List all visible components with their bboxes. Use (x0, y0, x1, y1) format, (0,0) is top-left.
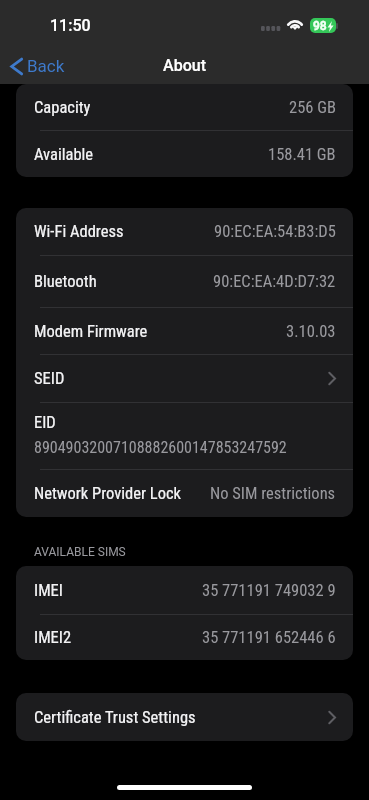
staticText: Bluetooth (34, 272, 97, 291)
staticText: Certificate Trust Settings (34, 708, 196, 727)
button[interactable]: Capacity (16, 84, 353, 130)
button[interactable]: IMEI2 (16, 615, 353, 660)
staticText: 90:EC:EA:4D:D7:32 (213, 272, 336, 291)
button[interactable]: SEID (16, 355, 353, 402)
staticText: 90:EC:EA:54:B3:D5 (214, 222, 336, 241)
button[interactable]: Bluetooth (16, 256, 353, 307)
staticText: IMEI2 (34, 628, 72, 647)
staticText: Wi-Fi Address (34, 222, 124, 241)
staticText: 89049032007108882600147853247592 (34, 438, 287, 457)
button[interactable]: IMEI (16, 566, 353, 614)
button[interactable]: Certificate Trust Settings (16, 693, 353, 741)
staticText: 158.41 GB (268, 145, 336, 164)
staticText: No SIM restrictions (210, 484, 336, 503)
staticText: 98 (313, 19, 327, 33)
button[interactable]: Back (0, 53, 75, 79)
staticText: Back (27, 56, 65, 76)
staticText: About (163, 56, 206, 75)
staticText: Network Provider Lock (34, 484, 182, 503)
staticText: 35 771191 749032 9 (202, 581, 336, 600)
button[interactable]: Network Provider Lock (16, 470, 353, 517)
button[interactable]: Wi-Fi Address (16, 208, 353, 255)
staticText: Available (34, 145, 94, 164)
staticText: Capacity (34, 98, 91, 117)
button[interactable]: Available (16, 131, 353, 177)
staticText: AVAILABLE SIMS (34, 545, 126, 559)
button[interactable]: Modem Firmware (16, 308, 353, 354)
staticText: Modem Firmware (34, 322, 148, 341)
staticText: SEID (34, 369, 65, 388)
staticText: 11:50 (50, 16, 91, 35)
staticText: 3.10.03 (286, 322, 336, 341)
staticText: 256 GB (289, 98, 336, 117)
staticText: 35 771191 652446 6 (202, 628, 336, 647)
staticText: IMEI (34, 581, 63, 600)
button[interactable]: EID (16, 403, 353, 469)
staticText: EID (34, 413, 56, 432)
